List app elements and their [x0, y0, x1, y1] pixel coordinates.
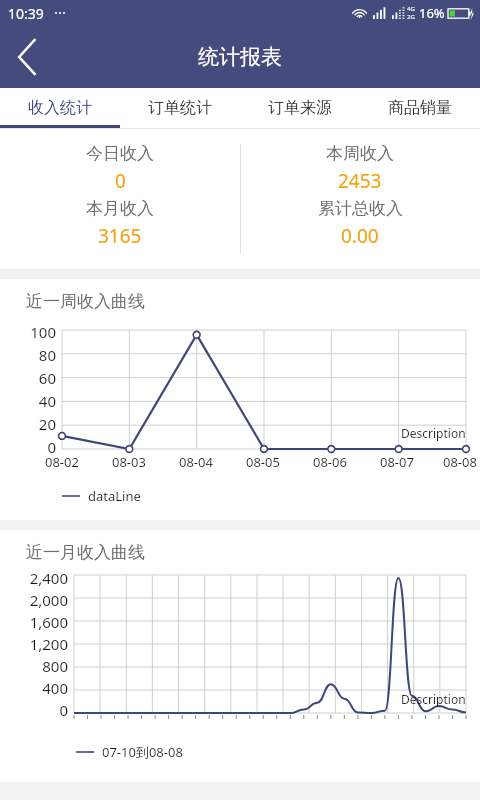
- staticText: 07-10到08-08: [102, 743, 183, 761]
- staticText: 400: [42, 678, 68, 698]
- staticText: 0: [47, 437, 56, 457]
- staticText: 08-04: [179, 453, 213, 471]
- staticText: 20: [38, 414, 56, 434]
- button[interactable]: 订单来源: [240, 88, 360, 128]
- staticText: 本周收入: [326, 143, 394, 164]
- staticText: 0.00: [341, 223, 379, 249]
- staticText: 08-03: [112, 453, 146, 471]
- staticText: 2,000: [29, 590, 68, 610]
- staticText: 3165: [98, 223, 142, 249]
- staticText: 累计总收入: [318, 198, 403, 219]
- staticText: 近一月收入曲线: [26, 542, 145, 563]
- staticText: 统计报表: [198, 44, 282, 70]
- button[interactable]: 商品销量: [360, 88, 480, 128]
- staticText: 16%: [419, 4, 445, 22]
- staticText: 近一周收入曲线: [26, 291, 145, 312]
- staticText: 4G: [407, 5, 415, 13]
- button[interactable]: 收入统计: [0, 88, 120, 128]
- staticText: 80: [38, 345, 56, 365]
- staticText: 100: [30, 322, 56, 342]
- staticText: 40: [38, 391, 56, 411]
- button[interactable]: Back: [0, 29, 56, 85]
- staticText: 0: [59, 700, 68, 720]
- staticText: 商品销量: [388, 98, 452, 118]
- staticText: 08-05: [246, 453, 280, 471]
- staticText: 1,200: [29, 634, 68, 654]
- staticText: Description: [401, 691, 466, 707]
- staticText: 收入统计: [28, 98, 92, 118]
- staticText: 订单统计: [148, 98, 212, 118]
- staticText: 08-07: [380, 453, 414, 471]
- staticText: 0: [115, 168, 126, 194]
- staticText: 08-08: [443, 453, 477, 471]
- staticText: 08-02: [45, 453, 79, 471]
- staticText: 2,400: [29, 568, 68, 588]
- staticText: 1,600: [29, 612, 68, 632]
- staticText: 10:39: [8, 4, 44, 23]
- staticText: 800: [42, 656, 68, 676]
- staticText: 2453: [338, 168, 382, 194]
- staticText: 本月收入: [86, 198, 154, 219]
- staticText: 08-06: [313, 453, 347, 471]
- staticText: dataLine: [88, 487, 141, 505]
- staticText: 2G: [407, 13, 415, 21]
- staticText: 60: [38, 368, 56, 388]
- staticText: 今日收入: [86, 143, 154, 164]
- button[interactable]: 订单统计: [120, 88, 240, 128]
- staticText: Description: [401, 425, 466, 441]
- staticText: 订单来源: [268, 98, 332, 118]
